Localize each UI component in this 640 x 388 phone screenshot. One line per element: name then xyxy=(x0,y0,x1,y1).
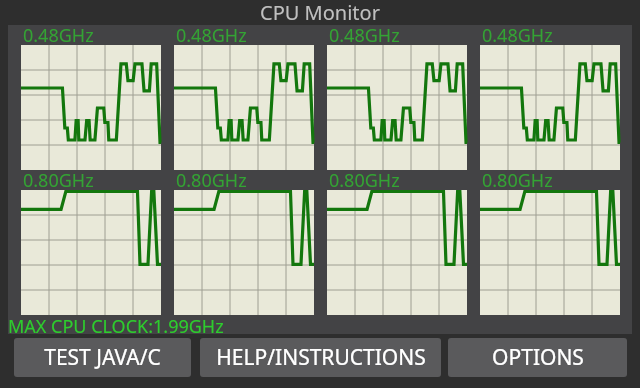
staticText: CPU Monitor xyxy=(260,0,380,24)
staticText: 0.80GHz xyxy=(329,168,400,188)
staticText: 0.48GHz xyxy=(176,23,247,43)
staticText: MAX CPU CLOCK:1.99GHz xyxy=(8,314,224,333)
staticText: 0.48GHz xyxy=(23,23,94,43)
staticText: 0.80GHz xyxy=(176,168,247,188)
staticText: TEST JAVA/C xyxy=(44,343,161,372)
staticText: 0.48GHz xyxy=(329,23,400,43)
button[interactable]: OPTIONS xyxy=(448,338,627,377)
button[interactable]: TEST JAVA/C xyxy=(14,338,191,377)
staticText: 0.80GHz xyxy=(482,168,553,188)
staticText: 0.48GHz xyxy=(482,23,553,43)
staticText: OPTIONS xyxy=(492,343,584,372)
staticText: 0.80GHz xyxy=(23,168,94,188)
staticText: HELP/INSTRUCTIONS xyxy=(216,343,426,372)
button[interactable]: HELP/INSTRUCTIONS xyxy=(200,338,441,377)
